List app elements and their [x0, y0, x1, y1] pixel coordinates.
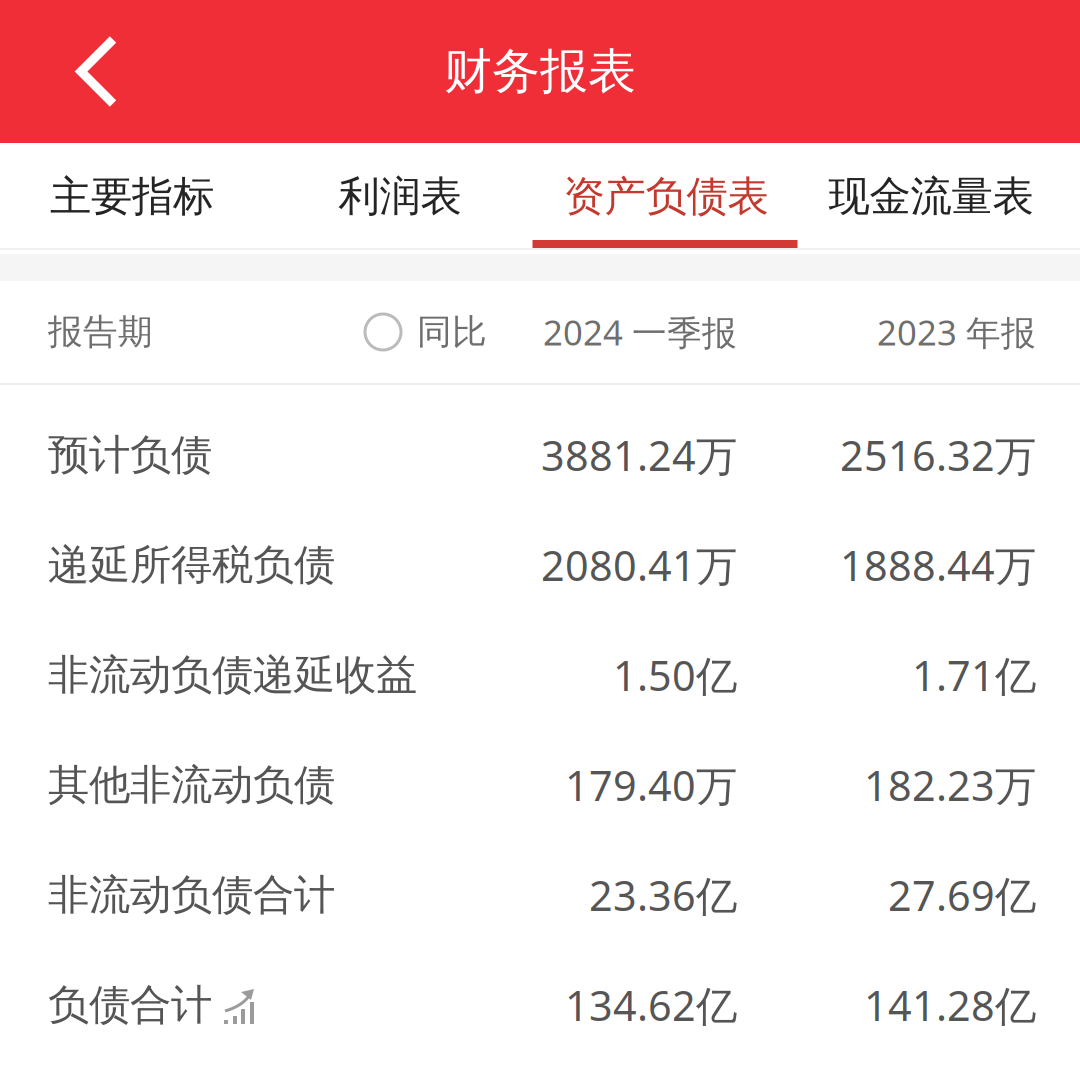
staticText: 同比: [417, 311, 487, 353]
staticText: 1.50亿: [613, 648, 737, 702]
staticText: 报告期: [48, 311, 153, 353]
button[interactable]: 资产负债表: [530, 143, 802, 248]
button[interactable]: 预计负债: [0, 400, 1080, 510]
button[interactable]: 现金流量表: [792, 143, 1070, 248]
staticText: 179.40万: [565, 758, 737, 812]
staticText: 134.62亿: [565, 978, 737, 1032]
staticText: 3881.24万: [541, 428, 737, 482]
staticText: 2516.32万: [840, 428, 1036, 482]
button[interactable]: 递延所得税负债: [0, 510, 1080, 620]
staticText: 2080.41万: [541, 538, 737, 592]
staticText: 现金流量表: [828, 171, 1033, 222]
staticText: 非流动负债递延收益: [48, 650, 417, 700]
staticText: 利润表: [338, 171, 461, 222]
button[interactable]: Back: [0, 0, 150, 143]
button[interactable]: 同比: [356, 281, 496, 383]
staticText: 递延所得税负债: [48, 540, 335, 590]
button[interactable]: 负债合计: [0, 950, 1080, 1060]
staticText: 1.71亿: [912, 648, 1036, 702]
staticText: 182.23万: [864, 758, 1036, 812]
staticText: 预计负债: [48, 430, 212, 480]
staticText: 财务报表: [444, 42, 636, 101]
staticText: 2024 一季报: [543, 309, 737, 355]
staticText: 27.69亿: [888, 868, 1036, 922]
button[interactable]: 利润表: [270, 143, 530, 248]
button[interactable]: 其他非流动负债: [0, 730, 1080, 840]
button[interactable]: 非流动负债合计: [0, 840, 1080, 950]
staticText: 非流动负债合计: [48, 870, 335, 920]
staticText: 141.28亿: [864, 978, 1036, 1032]
button[interactable]: 非流动负债递延收益: [0, 620, 1080, 730]
staticText: 其他非流动负债: [48, 760, 335, 810]
button[interactable]: 主要指标: [0, 143, 267, 248]
staticText: 资产负债表: [563, 171, 768, 222]
staticText: 负债合计: [48, 980, 212, 1030]
staticText: 2023 年报: [877, 309, 1036, 355]
staticText: 1888.44万: [840, 538, 1036, 592]
staticText: 主要指标: [50, 171, 214, 222]
staticText: 23.36亿: [589, 868, 737, 922]
